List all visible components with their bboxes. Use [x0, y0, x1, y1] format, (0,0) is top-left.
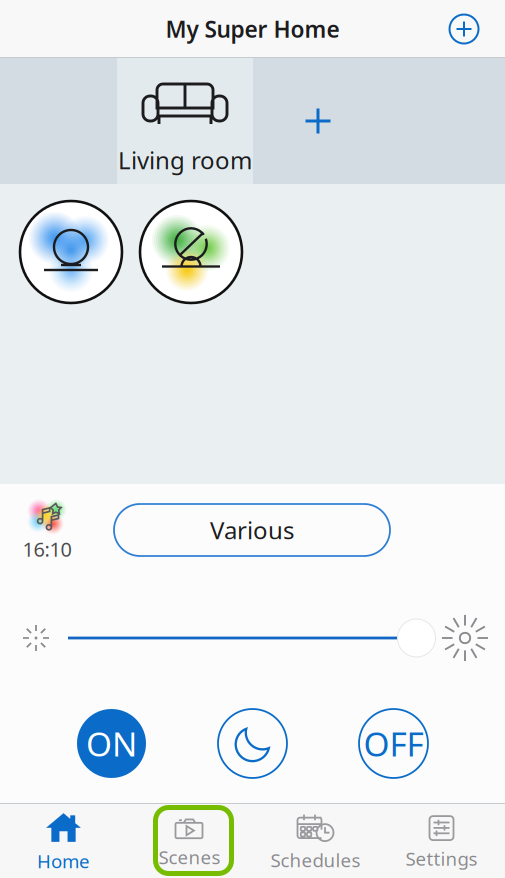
button[interactable]: Night mode: [218, 709, 287, 778]
staticText: OFF: [363, 721, 423, 766]
staticText: Various: [210, 514, 294, 546]
staticText: Schedules: [270, 848, 360, 872]
button[interactable]: Add room: [253, 58, 383, 184]
staticText: My Super Home: [165, 14, 339, 44]
staticText: Home: [37, 849, 90, 873]
button[interactable]: ON: [77, 709, 146, 778]
button[interactable]: Various: [114, 504, 390, 556]
button[interactable]: Living room: [117, 58, 253, 184]
button[interactable]: Home: [0, 803, 126, 878]
button[interactable]: Ceiling light: [19, 200, 123, 304]
button[interactable]: Settings: [378, 803, 504, 878]
button[interactable]: Add: [440, 5, 488, 53]
button[interactable]: Schedules: [252, 803, 378, 878]
staticText: Scenes: [158, 845, 220, 869]
button[interactable]: Scenes: [126, 803, 252, 878]
button[interactable]: OFF: [359, 709, 428, 778]
button[interactable]: 16:10: [16, 494, 78, 566]
staticText: 16:10: [22, 536, 71, 562]
staticText: ON: [86, 721, 137, 766]
staticText: Settings: [405, 846, 477, 871]
staticText: Living room: [118, 144, 252, 176]
button[interactable]: Table lamp: [139, 200, 243, 304]
